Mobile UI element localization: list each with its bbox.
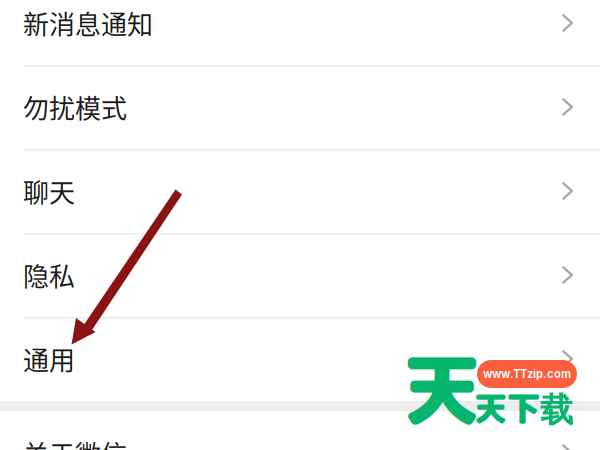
staticText: 天 [403,335,481,443]
button[interactable]: 隐私 [0,233,600,317]
button[interactable]: 关于微信 [0,411,600,450]
button[interactable]: 新消息通知 [0,0,600,65]
staticText: www.TTzip.com [483,367,571,381]
staticText: 天下载 [474,385,573,431]
button[interactable]: 聊天 [0,149,600,233]
staticText: 勿扰模式 [23,88,127,126]
button[interactable]: 通用 [0,317,600,401]
staticText: 聊天 [23,172,75,210]
staticText: 通用 [23,340,75,378]
button[interactable]: 勿扰模式 [0,65,600,149]
staticText: 隐私 [23,256,75,294]
staticText: 新消息通知 [23,4,153,42]
staticText: 关于微信 [23,434,127,450]
